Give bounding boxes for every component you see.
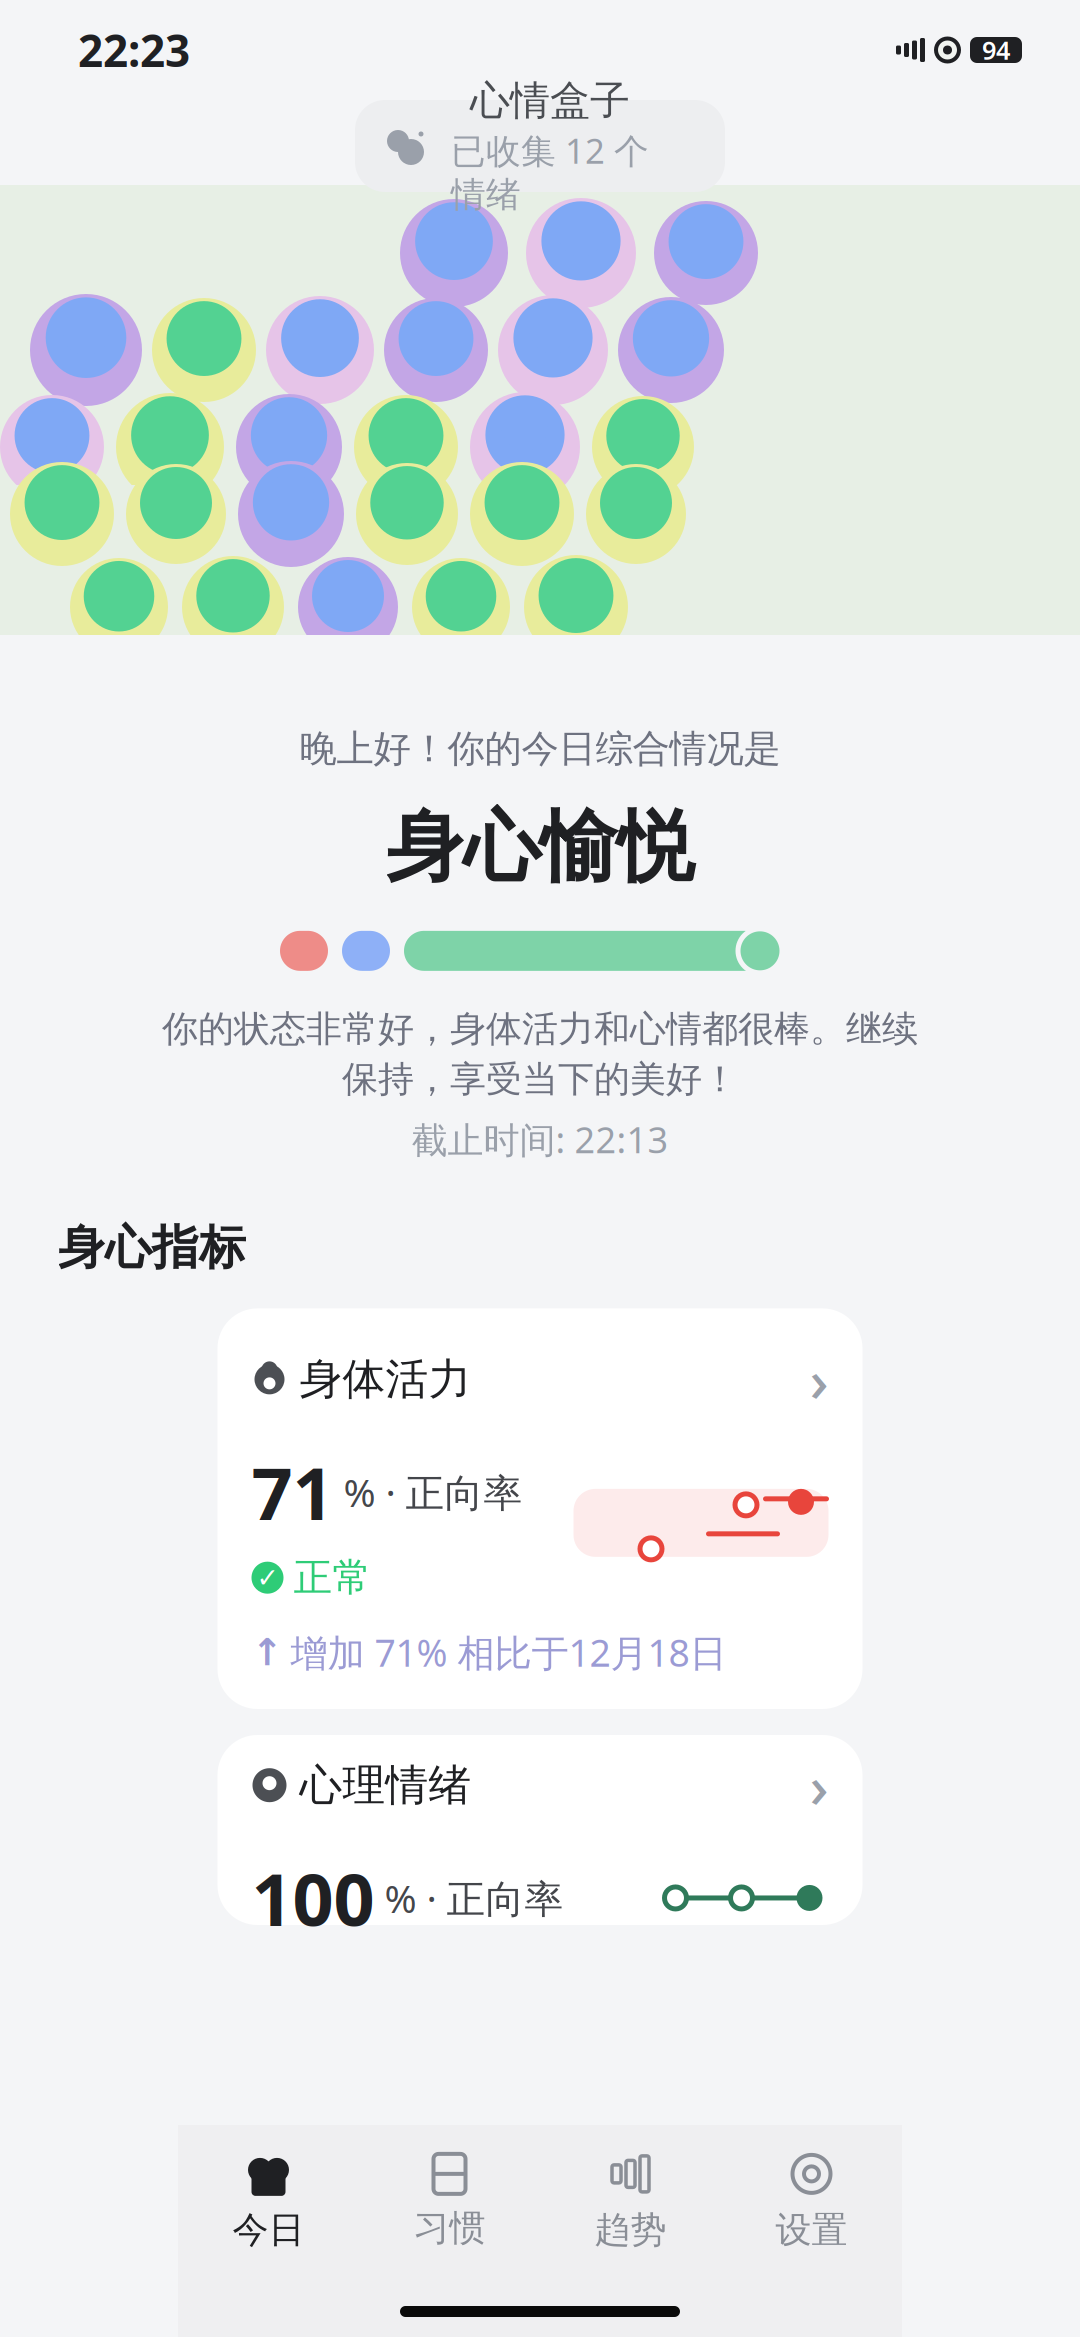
button[interactable]: 身体活力 <box>217 1308 862 1709</box>
button[interactable]: 习惯 <box>359 2147 540 2257</box>
button[interactable]: 设置 <box>721 2147 902 2257</box>
staticText: › <box>809 1340 828 1418</box>
staticText: 22:23 <box>78 21 190 79</box>
staticText: 趋势 <box>594 2208 666 2252</box>
staticText: 正常 <box>293 1554 371 1601</box>
staticText: 增加 71% 相比于12月18日 <box>290 1627 726 1677</box>
staticText: 晚上好！你的今日综合情况是 <box>299 726 780 772</box>
staticText: 今日 <box>232 2208 304 2252</box>
staticText: ↑ <box>251 1631 282 1673</box>
staticText: ✓ <box>256 1562 278 1593</box>
staticText: 71 <box>251 1444 333 1540</box>
staticText: 身体活力 <box>299 1353 471 1406</box>
staticText: 保持，享受当下的美好！ <box>342 1057 738 1101</box>
staticText: 截止时间: 22:13 <box>411 1115 668 1163</box>
button[interactable]: 心情盒子 <box>355 100 725 192</box>
staticText: % · 正向率 <box>374 1872 563 1924</box>
staticText: 设置 <box>775 2208 847 2252</box>
staticText: 你的状态非常好，身体活力和心情都很棒。继续 <box>162 1007 918 1051</box>
staticText: % · 正向率 <box>333 1466 522 1518</box>
staticText: › <box>809 1746 828 1824</box>
staticText: 已收集 12 个情绪 <box>451 127 649 216</box>
button[interactable]: 趋势 <box>540 2147 721 2257</box>
staticText: 心理情绪 <box>299 1759 471 1811</box>
staticText: 身心愉悦 <box>386 800 694 895</box>
staticText: 心情盒子 <box>470 76 630 125</box>
staticText: 100 <box>251 1850 374 1946</box>
button[interactable]: 今日 <box>178 2147 359 2257</box>
staticText: 94 <box>982 33 1010 67</box>
staticText: 习惯 <box>413 2206 485 2250</box>
button[interactable]: 心理情绪 <box>217 1735 862 1925</box>
staticText: 身心指标 <box>58 1219 246 1276</box>
